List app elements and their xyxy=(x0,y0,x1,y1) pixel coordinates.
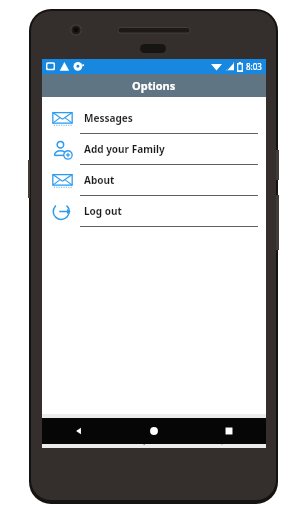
staticText: Messages xyxy=(84,111,133,125)
button[interactable]: Add your Family xyxy=(42,134,266,165)
button[interactable]: Messages xyxy=(42,103,266,134)
staticText: About xyxy=(84,173,115,187)
other: Recents xyxy=(223,425,235,437)
button[interactable]: About xyxy=(42,165,266,196)
staticText: All Members xyxy=(57,435,102,445)
button[interactable]: My Profile xyxy=(116,414,191,448)
staticText: Options xyxy=(132,78,176,93)
staticText: My Profile xyxy=(136,435,172,445)
staticText: Options xyxy=(215,435,243,445)
other: Home xyxy=(148,425,160,437)
staticText: Log out xyxy=(84,204,122,218)
staticText: Add your Family xyxy=(84,142,165,156)
staticText: 8:03 xyxy=(246,61,262,72)
button[interactable]: All Members xyxy=(42,414,116,448)
other: Back xyxy=(73,425,85,437)
button[interactable]: Options xyxy=(191,414,266,448)
button[interactable]: Log out xyxy=(42,196,266,227)
